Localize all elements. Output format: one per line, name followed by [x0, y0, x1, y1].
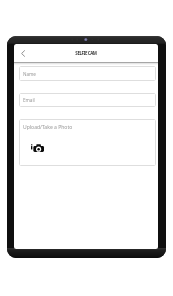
staticText: Name — [23, 71, 36, 77]
staticText: SELFIE CAM — [75, 50, 97, 56]
staticText: Email — [23, 97, 35, 103]
button[interactable]: Upload/Take a Photo — [19, 119, 156, 166]
button[interactable]: Name — [19, 66, 156, 81]
staticText: Upload/Take a Photo — [23, 124, 73, 131]
button[interactable]: Email — [19, 93, 156, 107]
button[interactable]: Back — [16, 47, 29, 60]
